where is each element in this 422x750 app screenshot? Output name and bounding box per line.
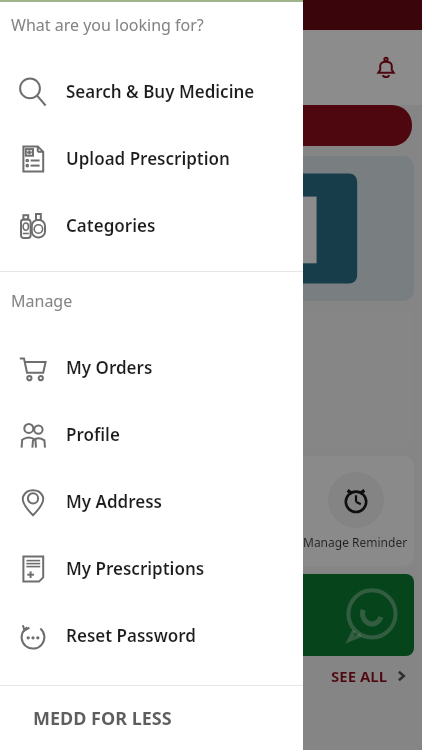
button[interactable]: Manage Reminder <box>303 472 408 550</box>
button[interactable] <box>8 311 414 446</box>
button[interactable]: My Orders <box>0 334 303 401</box>
staticText: Upload Prescription <box>66 147 230 170</box>
button[interactable]: Categories <box>0 192 303 259</box>
staticText: Manage Reminder <box>303 534 408 550</box>
staticText: Profile <box>66 423 120 446</box>
staticText: My Orders <box>66 356 153 379</box>
button[interactable]: Notifications <box>364 46 408 90</box>
button[interactable]: Search & Buy Medicine <box>0 58 303 125</box>
staticText: MEDD FOR LESS <box>33 706 172 731</box>
staticText: My Prescriptions <box>66 557 205 580</box>
button[interactable]: Upload Prescription <box>0 125 303 192</box>
button[interactable]: My Address <box>0 468 303 535</box>
button[interactable] <box>8 156 414 301</box>
button[interactable]: Search Products... <box>10 105 412 146</box>
staticText: Manage <box>11 290 73 312</box>
button[interactable]: Reset Password <box>0 602 303 669</box>
button[interactable]: SEE ALL <box>331 666 408 686</box>
staticText: SEE ALL <box>331 666 388 686</box>
staticText: My Address <box>66 490 162 513</box>
staticText: VERIFIED <box>14 74 73 92</box>
staticText: Search & Buy Medicine <box>66 80 255 103</box>
staticText: Categories <box>66 214 156 237</box>
button[interactable]: My Prescriptions <box>0 535 303 602</box>
staticText: What are you looking for? <box>11 14 204 36</box>
staticText: Reset Password <box>66 624 196 647</box>
button[interactable]: Order on WhatsApp <box>8 574 414 656</box>
button[interactable]: Profile <box>0 401 303 468</box>
